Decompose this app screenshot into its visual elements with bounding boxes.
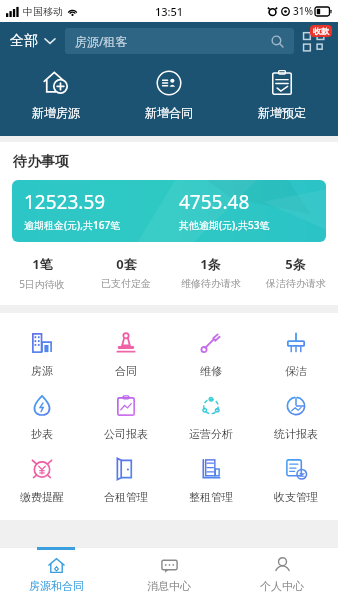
staticText: 新增房源 [32,105,80,120]
staticText: 新增合同 [145,105,193,120]
staticText: 整租管理 [189,490,233,504]
staticText: 统计报表 [274,427,318,441]
button[interactable]: 抄表 [0,386,84,449]
button[interactable]: 1条 [168,255,253,290]
button[interactable]: 收支管理 [253,449,338,512]
button[interactable]: 新增合同 [112,65,225,124]
staticText: 31% [293,4,313,18]
staticText: 其他逾期(元),共53笔 [179,218,270,232]
staticText: 5条 [285,255,306,273]
staticText: 1笔 [32,255,53,273]
staticText: 全部 [10,32,38,50]
button[interactable]: 12523.59 [12,180,326,242]
staticText: 4755.48 [179,189,250,215]
button[interactable]: 合同 [84,323,168,386]
staticText: 房源和合同 [29,579,84,593]
button[interactable]: 运营分析 [168,386,253,449]
button[interactable]: 房源 [0,323,84,386]
staticText: 公司报表 [104,427,148,441]
staticText: 合租管理 [104,490,148,504]
button[interactable]: 个人中心 [225,548,338,600]
button[interactable]: 保洁 [253,323,338,386]
staticText: 1条 [200,255,221,273]
button[interactable]: 全部 [10,32,55,50]
staticText: 收支管理 [274,490,318,504]
staticText: 5日内待收 [19,277,65,291]
staticText: 12523.59 [24,189,106,215]
staticText: 13:51 [155,4,184,19]
button[interactable]: 合租管理 [84,449,168,512]
button[interactable]: 维修 [168,323,253,386]
staticText: 抄表 [31,427,53,441]
button[interactable]: 新增房源 [0,65,112,124]
button[interactable]: 房源和合同 [0,548,112,600]
staticText: 待办事项 [13,153,69,171]
staticText: 收款 [313,26,329,36]
staticText: 维修 [200,364,222,378]
staticText: 保洁 [285,364,307,378]
staticText: 房源/租客 [75,33,128,49]
staticText: 合同 [115,364,137,378]
staticText: 逾期租金(元),共167笔 [24,218,121,232]
button[interactable]: 公司报表 [84,386,168,449]
button[interactable]: 消息中心 [112,548,225,600]
staticText: 中国移动 [23,5,63,18]
staticText: 新增预定 [258,105,306,120]
button[interactable]: 0套 [84,255,168,290]
staticText: 运营分析 [189,427,233,441]
staticText: 个人中心 [260,579,304,593]
staticText: 0套 [116,255,137,273]
button[interactable]: 缴费提醒 [0,449,84,512]
button[interactable]: 5条 [253,255,338,290]
button[interactable]: 统计报表 [253,386,338,449]
staticText: 消息中心 [147,579,191,593]
staticText: 维修待办请求 [181,277,241,290]
button[interactable]: 1笔 [0,255,84,291]
button[interactable]: 新增预定 [225,65,338,124]
staticText: 缴费提醒 [20,490,64,504]
staticText: 保洁待办请求 [266,277,326,290]
staticText: 房源 [31,364,53,378]
button[interactable]: 整租管理 [168,449,253,512]
button[interactable]: 收款二维码 [302,28,328,54]
staticText: 已支付定金 [101,277,151,290]
button[interactable]: 房源/租客 [65,28,294,54]
